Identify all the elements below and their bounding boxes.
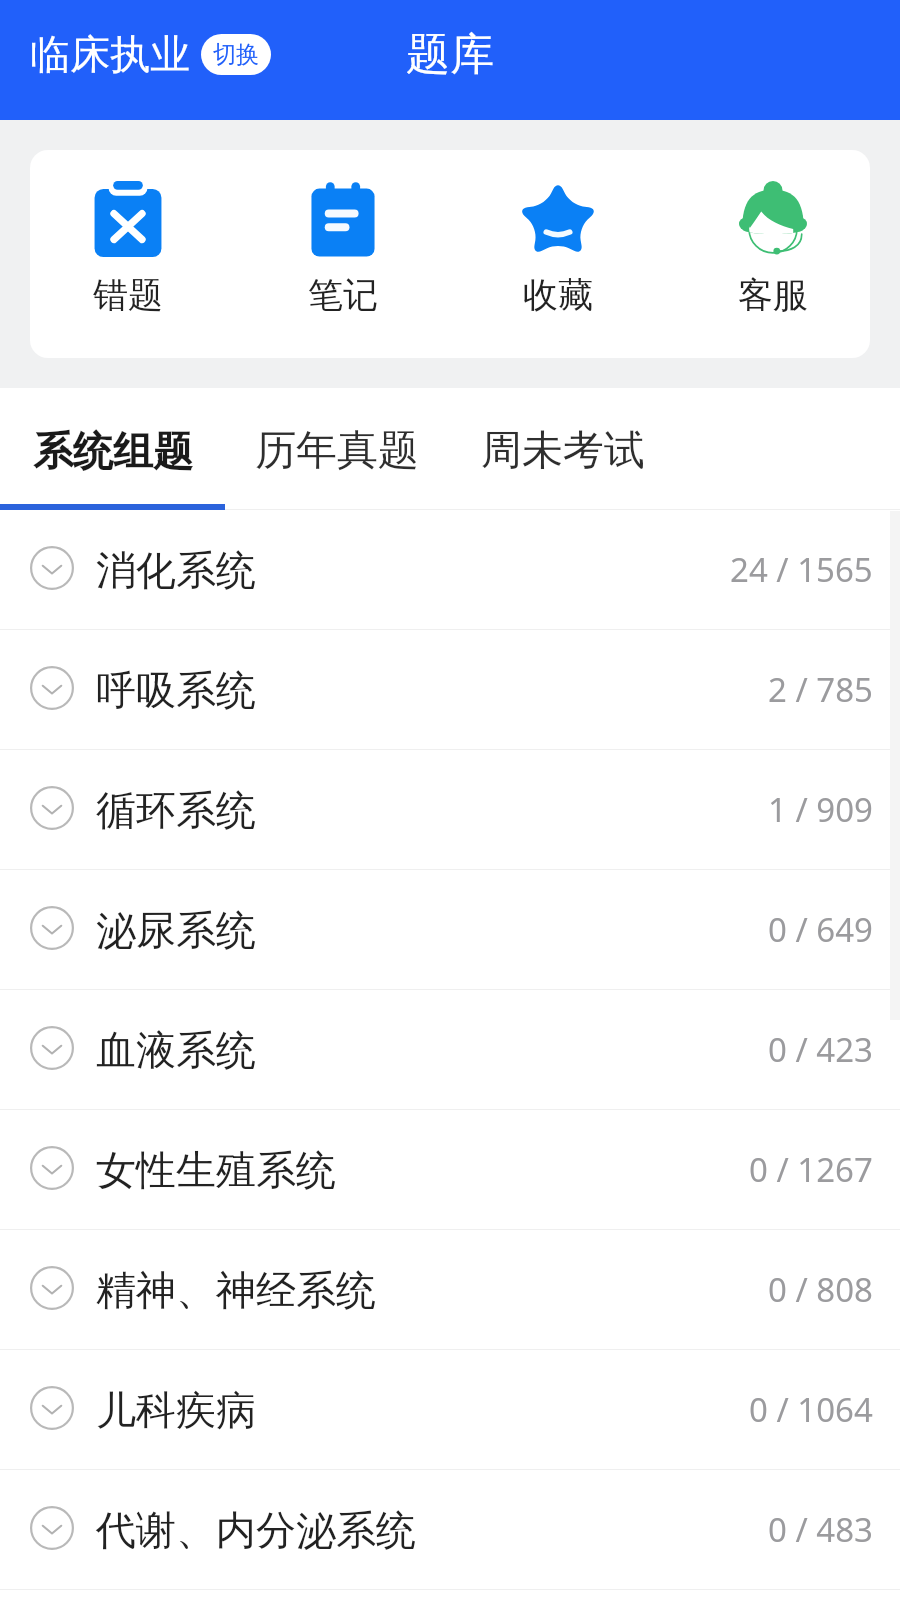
staticText: 血液系统 [96, 1025, 256, 1075]
staticText: 儿科疾病 [96, 1385, 256, 1435]
button[interactable]: 收藏 [450, 174, 665, 334]
staticText: 0 / 423 [768, 1027, 873, 1072]
staticText: 精神、神经系统 [96, 1265, 376, 1315]
staticText: 周未考试 [481, 425, 645, 477]
staticText: 题库 [406, 27, 494, 82]
button[interactable]: 血液系统 [0, 990, 900, 1109]
button[interactable]: 历年真题 [224, 402, 450, 496]
button[interactable]: 周未考试 [450, 402, 676, 496]
staticText: 呼吸系统 [96, 665, 256, 715]
button[interactable]: 临床执业 [30, 29, 271, 79]
staticText: 历年真题 [255, 425, 419, 477]
staticText: 循环系统 [96, 785, 256, 835]
button[interactable]: 女性生殖系统 [0, 1110, 900, 1229]
button[interactable]: 代谢、内分泌系统 [0, 1470, 900, 1589]
other: 客服 [735, 181, 811, 257]
button[interactable]: 系统组题 [0, 403, 224, 495]
staticText: 笔记 [308, 273, 378, 317]
staticText: 女性生殖系统 [96, 1145, 336, 1195]
staticText: 收藏 [523, 273, 593, 317]
button[interactable]: 循环系统 [0, 750, 900, 869]
button[interactable]: 呼吸系统 [0, 630, 900, 749]
button[interactable]: 儿科疾病 [0, 1350, 900, 1469]
button[interactable]: 消化系统 [0, 510, 900, 629]
staticText: 消化系统 [96, 545, 256, 595]
other: 笔记 [305, 181, 381, 257]
button[interactable]: 精神、神经系统 [0, 1230, 900, 1349]
other: 收藏 [520, 181, 596, 257]
button[interactable]: 客服 [665, 174, 880, 334]
other: 错题 [90, 181, 166, 257]
staticText: 1 / 909 [768, 787, 873, 832]
staticText: 临床执业 [30, 29, 190, 79]
staticText: 0 / 649 [768, 907, 873, 952]
staticText: 0 / 1064 [749, 1387, 873, 1432]
staticText: 错题 [93, 273, 163, 317]
staticText: 0 / 1267 [749, 1147, 873, 1192]
staticText: 代谢、内分泌系统 [96, 1505, 416, 1555]
staticText: 泌尿系统 [96, 905, 256, 955]
staticText: 24 / 1565 [730, 547, 873, 592]
button[interactable]: 笔记 [235, 174, 450, 334]
button[interactable]: 泌尿系统 [0, 870, 900, 989]
staticText: 2 / 785 [768, 667, 873, 712]
staticText: 0 / 808 [768, 1267, 873, 1312]
staticText: 切换 [213, 40, 259, 69]
button[interactable]: 错题 [20, 174, 235, 334]
staticText: 0 / 483 [768, 1507, 873, 1552]
staticText: 系统组题 [33, 426, 193, 476]
staticText: 客服 [738, 273, 808, 317]
